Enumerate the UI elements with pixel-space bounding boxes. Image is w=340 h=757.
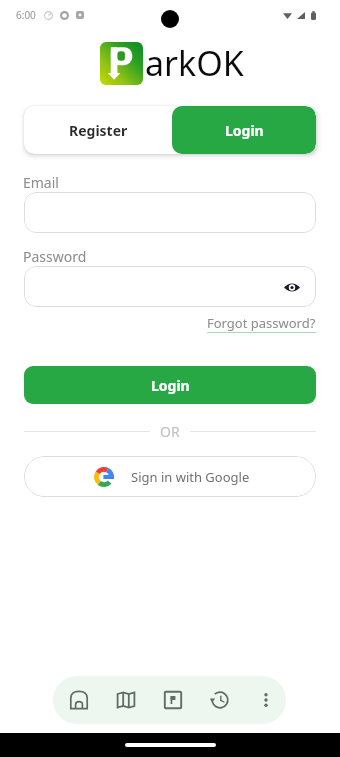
staticText: Register bbox=[69, 121, 128, 140]
staticText: Forgot password? bbox=[207, 314, 316, 332]
button[interactable]: Show password bbox=[280, 275, 304, 299]
button[interactable]: Login bbox=[24, 366, 316, 404]
button[interactable]: History bbox=[199, 679, 241, 721]
button[interactable]: Sign in with Google bbox=[24, 456, 316, 497]
staticText: Sign in with Google bbox=[131, 468, 250, 486]
staticText: Password bbox=[23, 247, 87, 266]
staticText: Email bbox=[23, 173, 59, 192]
button[interactable]: Show password bbox=[24, 266, 316, 307]
button[interactable]: Parking bbox=[152, 679, 194, 721]
staticText: OR bbox=[160, 422, 180, 441]
staticText: arkOK bbox=[145, 40, 244, 86]
button[interactable] bbox=[24, 192, 316, 233]
staticText: 6:00 bbox=[16, 8, 36, 22]
staticText: Login bbox=[225, 121, 264, 140]
button[interactable]: More options bbox=[246, 679, 286, 721]
button[interactable]: Login bbox=[172, 106, 316, 154]
button[interactable]: Forgot password? bbox=[207, 314, 316, 333]
button[interactable]: Register bbox=[24, 106, 172, 154]
button[interactable]: Map bbox=[105, 679, 147, 721]
button[interactable]: Home bbox=[58, 679, 100, 721]
staticText: Login bbox=[151, 376, 190, 395]
